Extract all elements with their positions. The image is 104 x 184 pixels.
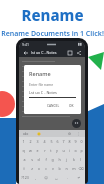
button[interactable]: z (28, 164, 35, 173)
staticText: j (66, 157, 67, 162)
button[interactable]: d (35, 155, 42, 164)
staticText: p (80, 148, 83, 153)
staticText: Lst uo C - Notes (29, 90, 57, 95)
button[interactable]: , (30, 173, 40, 182)
staticText: r (44, 148, 46, 153)
staticText: y (56, 148, 58, 153)
button[interactable]: e (34, 146, 41, 155)
staticText: i (69, 148, 70, 153)
staticText: w (29, 148, 32, 153)
staticText: m (72, 166, 76, 171)
staticText: ⋮ (77, 132, 81, 136)
button[interactable]: a (20, 155, 28, 164)
staticText: Rename (29, 70, 51, 77)
button[interactable]: CANCEL (45, 103, 62, 109)
button[interactable]: m (70, 164, 77, 173)
button[interactable]: ⇧ (20, 164, 28, 173)
staticText: 2 (29, 139, 32, 144)
button[interactable]: f (42, 155, 49, 164)
button[interactable]: n (63, 164, 70, 173)
staticText: ☺ (44, 176, 48, 180)
button[interactable]: c (42, 164, 49, 173)
button[interactable]: Back (22, 49, 29, 56)
staticText: b (58, 166, 61, 171)
staticText: 4 (43, 139, 46, 144)
staticText: s (31, 157, 33, 162)
button[interactable]: 4 (41, 137, 48, 146)
staticText: ⚙ (68, 132, 72, 136)
staticText: o (74, 148, 77, 153)
staticText: 3 (36, 139, 39, 144)
staticText: CANCEL (47, 104, 60, 108)
button[interactable]: h (56, 155, 63, 164)
button[interactable]: 1 (20, 137, 27, 146)
button[interactable]: ?123 (20, 173, 30, 182)
staticText: l (80, 157, 81, 162)
staticText: 9 (74, 139, 77, 144)
button[interactable]: p (78, 146, 84, 155)
button[interactable]: q (20, 146, 27, 155)
button[interactable]: k (70, 155, 77, 164)
staticText: abc (23, 132, 29, 136)
button[interactable]: 9 (72, 137, 78, 146)
staticText: Rename (21, 5, 84, 25)
button[interactable]: w (27, 146, 34, 155)
button[interactable]: u (60, 146, 66, 155)
staticText: f (45, 157, 47, 162)
button[interactable]: 8 (66, 137, 72, 146)
button[interactable]: s (28, 155, 35, 164)
button[interactable]: i (66, 146, 72, 155)
button[interactable]: r (41, 146, 48, 155)
button[interactable]: 6 (54, 137, 60, 146)
staticText: v (52, 166, 54, 171)
button[interactable]: j (63, 155, 70, 164)
staticText: lst uo C - Notes (31, 50, 57, 55)
staticText: 🙂 (37, 132, 41, 136)
staticText: ▮▮ (78, 42, 82, 46)
staticText: 7 (62, 139, 65, 144)
staticText: d (37, 157, 40, 162)
staticText: e (36, 148, 39, 153)
staticText: c (45, 166, 47, 171)
button[interactable]: OK (67, 103, 76, 109)
button[interactable]: 7 (60, 137, 66, 146)
staticText: x (38, 166, 40, 171)
button[interactable]: ↵ (73, 173, 84, 182)
button[interactable]: ☺ (40, 173, 51, 182)
staticText: q (22, 148, 25, 153)
staticText: h (58, 157, 61, 162)
button[interactable]: g (49, 155, 56, 164)
button[interactable]: 2 (27, 137, 34, 146)
button[interactable]: 3 (34, 137, 41, 146)
staticText: ␣ (55, 176, 58, 180)
staticText: . (67, 175, 68, 180)
staticText: a (23, 157, 26, 162)
button[interactable]: b (56, 164, 63, 173)
button[interactable]: t (48, 146, 54, 155)
button[interactable]: 5 (48, 137, 54, 146)
staticText: 0 (80, 139, 83, 144)
staticText: Rename Documents in 1 Click! (1, 29, 104, 39)
staticText: k (73, 157, 75, 162)
button[interactable]: Save (66, 49, 73, 56)
staticText: u (62, 148, 65, 153)
button[interactable]: o (72, 146, 78, 155)
button[interactable]: Add note (72, 119, 81, 128)
button[interactable]: x (35, 164, 42, 173)
staticText: g (51, 157, 54, 162)
button[interactable]: l (77, 155, 84, 164)
button[interactable]: y (54, 146, 60, 155)
button[interactable]: Share (75, 49, 82, 56)
button[interactable]: v (49, 164, 56, 173)
staticText: ⇧ (22, 167, 26, 171)
staticText: OK (69, 104, 74, 108)
staticText: Enter file name (29, 82, 54, 87)
staticText: ↵ (77, 176, 81, 180)
staticText: , (35, 175, 36, 180)
staticText: ?123 (21, 175, 29, 180)
button[interactable]: ␣ (51, 173, 62, 182)
staticText: 1 (22, 139, 25, 144)
button[interactable]: ⌫ (77, 164, 84, 173)
button[interactable]: 0 (78, 137, 84, 146)
